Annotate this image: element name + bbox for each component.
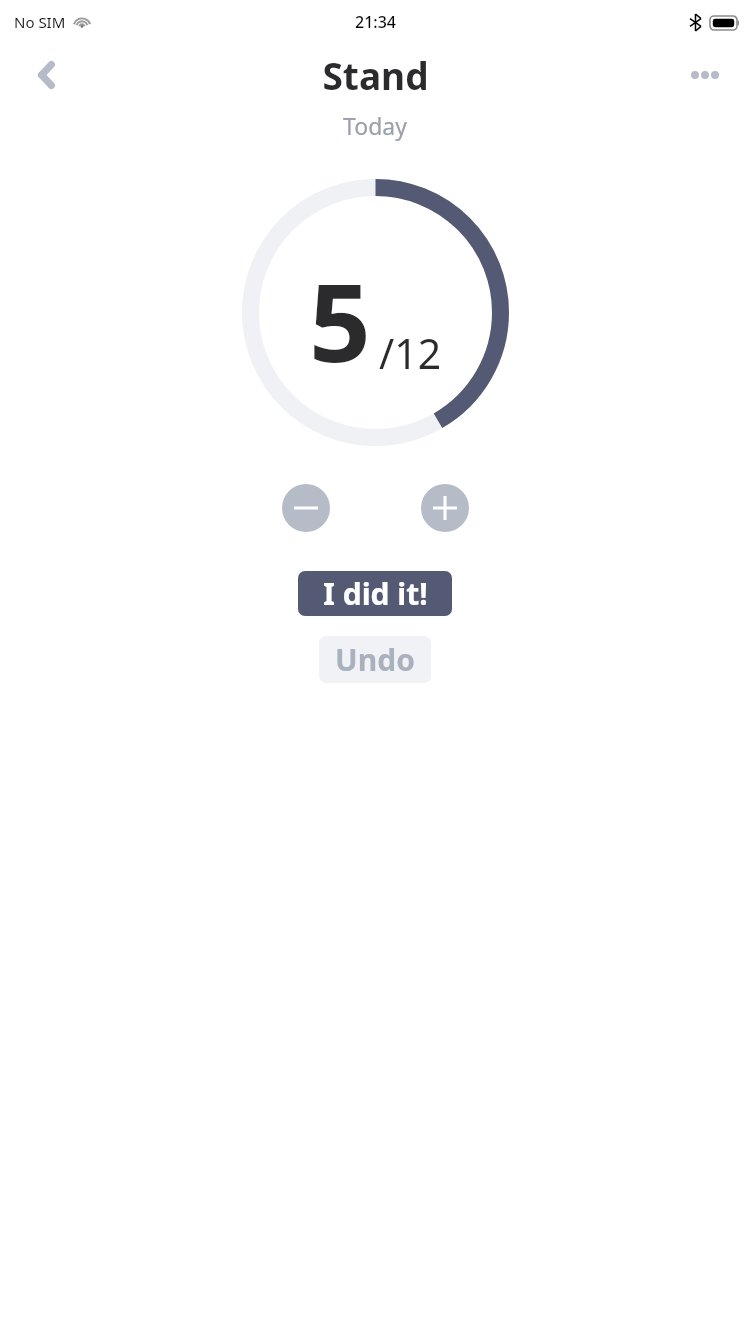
staticText: /12 xyxy=(379,325,442,381)
staticText: 5 xyxy=(309,247,371,394)
button[interactable]: Decrease xyxy=(282,484,330,532)
staticText: 21:34 xyxy=(355,11,396,33)
button[interactable]: Increase xyxy=(421,484,469,532)
staticText: No SIM xyxy=(14,12,66,32)
button[interactable]: Undo xyxy=(319,636,431,683)
button[interactable]: I did it! xyxy=(298,571,452,616)
button[interactable]: More options xyxy=(678,53,732,97)
staticText: I did it! xyxy=(323,573,428,614)
staticText: Stand xyxy=(322,50,429,100)
staticText: Undo xyxy=(335,639,415,680)
button[interactable]: Back xyxy=(22,51,70,99)
staticText: Today xyxy=(0,110,750,141)
